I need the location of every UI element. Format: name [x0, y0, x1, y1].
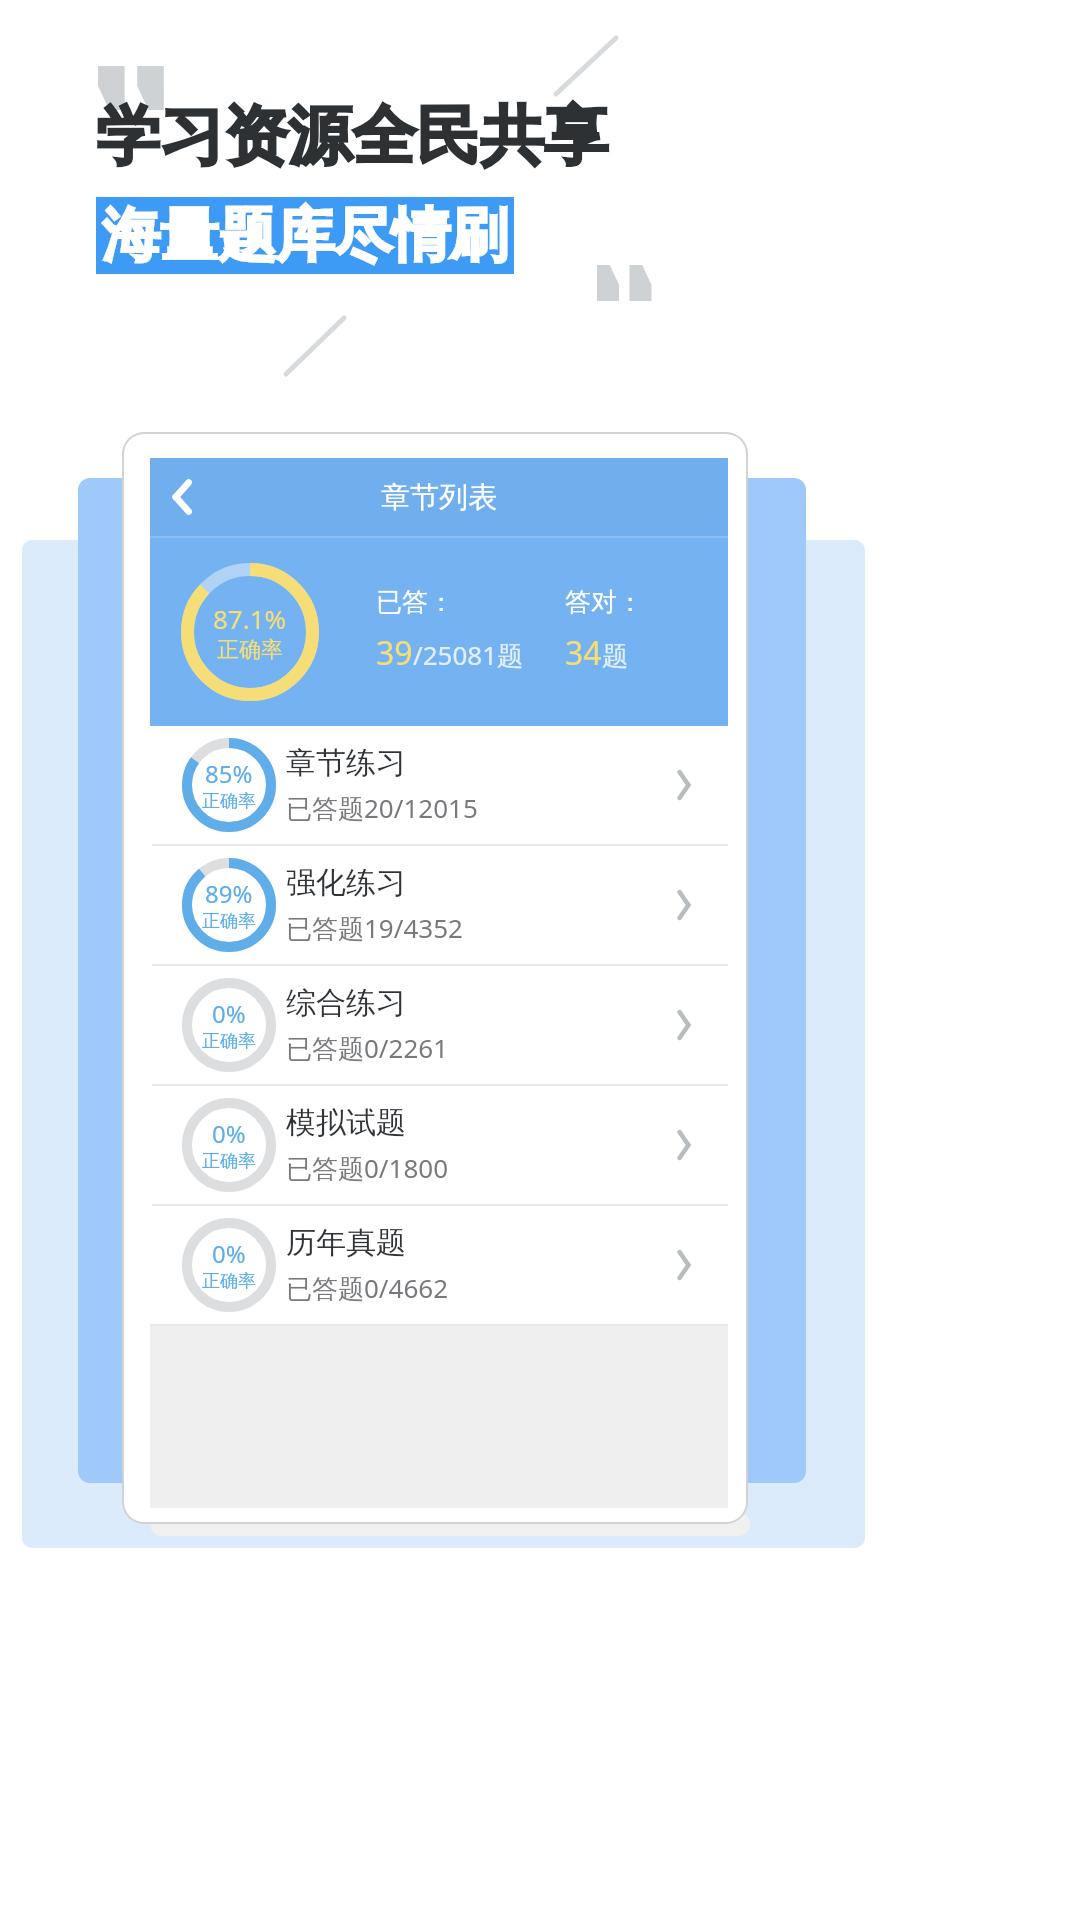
- staticText: 89%: [205, 877, 253, 910]
- button[interactable]: 0%: [150, 1086, 728, 1204]
- staticText: 85%: [205, 757, 253, 790]
- staticText: 0%: [212, 1117, 246, 1150]
- staticText: 章节列表: [381, 479, 497, 516]
- staticText: 已答题19/4352: [286, 910, 463, 946]
- button[interactable]: 85%: [150, 726, 728, 844]
- staticText: 已答题0/2261: [286, 1030, 449, 1066]
- staticText: 综合练习: [286, 984, 406, 1022]
- staticText: 已答题0/1800: [286, 1150, 449, 1186]
- staticText: 0%: [212, 997, 246, 1030]
- staticText: 正确率: [217, 636, 283, 664]
- staticText: 模拟试题: [286, 1104, 406, 1142]
- staticText: 正确率: [202, 1030, 256, 1053]
- button[interactable]: 0%: [150, 1206, 728, 1324]
- staticText: 历年真题: [286, 1224, 406, 1262]
- staticText: 0%: [212, 1237, 246, 1270]
- staticText: 答对：: [565, 586, 643, 619]
- staticText: 正确率: [202, 790, 256, 813]
- staticText: 34: [565, 631, 602, 675]
- staticText: 海量题库尽情刷: [102, 199, 508, 272]
- staticText: 题: [602, 640, 628, 673]
- staticText: 正确率: [202, 910, 256, 933]
- staticText: 学习资源全民共享: [96, 96, 608, 177]
- staticText: 章节练习: [286, 744, 406, 782]
- staticText: 强化练习: [286, 864, 406, 902]
- button[interactable]: Back: [150, 458, 216, 536]
- staticText: /25081题: [413, 637, 524, 673]
- staticText: 已答题20/12015: [286, 790, 478, 826]
- staticText: 正确率: [202, 1150, 256, 1173]
- staticText: 正确率: [202, 1270, 256, 1293]
- staticText: 已答题0/4662: [286, 1270, 449, 1306]
- button[interactable]: 0%: [150, 966, 728, 1084]
- button[interactable]: 89%: [150, 846, 728, 964]
- staticText: 39: [376, 631, 413, 675]
- staticText: 已答：: [376, 586, 454, 619]
- staticText: 87.1%: [213, 601, 287, 636]
